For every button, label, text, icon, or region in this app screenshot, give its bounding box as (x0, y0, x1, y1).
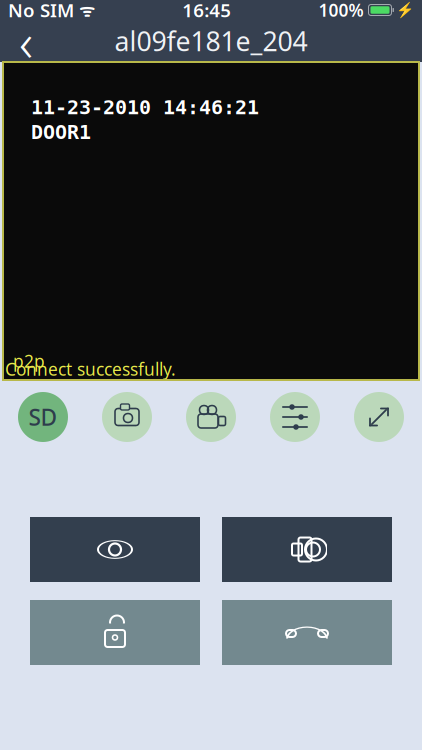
button[interactable]: Stream quality SD (18, 392, 68, 442)
staticText: ᯤ (74, 0, 95, 21)
staticText: al09fe181e_204 (114, 23, 307, 59)
button[interactable]: Settings (270, 392, 320, 442)
button[interactable]: Video (30, 517, 200, 582)
button[interactable]: Unlock door (30, 600, 200, 665)
staticText: No SIM (8, 0, 74, 22)
button[interactable]: Take snapshot (102, 392, 152, 442)
staticText: SD (28, 402, 57, 432)
staticText: ‹ (19, 6, 33, 76)
staticText: DOOR1 (31, 121, 91, 143)
button[interactable]: Back (0, 20, 52, 62)
staticText: ⚡ (396, 2, 414, 18)
button[interactable]: Full screen (354, 392, 404, 442)
button[interactable]: Hang up (222, 600, 392, 665)
button[interactable]: Audio (222, 517, 392, 582)
staticText: p2p (13, 349, 45, 372)
staticText: 16:45 (182, 0, 231, 22)
staticText: 100% (318, 0, 363, 21)
button[interactable]: Record video (186, 392, 236, 442)
staticText: 11-23-2010 14:46:21 (31, 96, 259, 119)
staticText: Connect successfully. (5, 357, 176, 380)
